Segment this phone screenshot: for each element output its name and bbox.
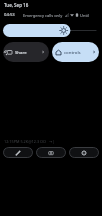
button[interactable]: controls <box>52 42 99 62</box>
staticText: controls <box>64 49 81 55</box>
button[interactable]: Share <box>3 42 49 62</box>
staticText: →| <box>49 139 55 144</box>
staticText: Tue, Sep 16 <box>4 2 29 8</box>
staticText: Emergency calls only <box>23 13 63 18</box>
button[interactable]: Settings <box>69 147 99 158</box>
staticText: Until 23:45 <box>80 13 98 18</box>
button[interactable]: Edit <box>3 147 33 158</box>
button[interactable]: Screenshot <box>36 147 66 158</box>
staticText: Share <box>15 49 27 55</box>
button[interactable] <box>3 24 96 37</box>
staticText: 12:15PM 5.2K@12.3 OO <box>4 139 47 144</box>
staticText: 04:53 <box>4 12 15 18</box>
